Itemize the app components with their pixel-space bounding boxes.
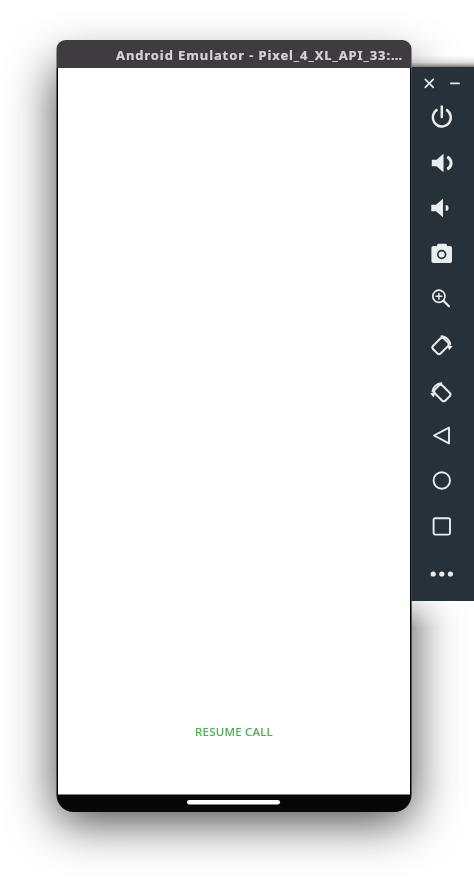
button[interactable]: RESUME CALL <box>176 718 291 745</box>
button[interactable] <box>426 510 458 542</box>
button[interactable] <box>421 75 438 92</box>
button[interactable] <box>426 330 458 362</box>
staticText: Android Emulator - Pixel_4_XL_API_33:… <box>116 46 403 62</box>
button[interactable] <box>426 377 458 409</box>
staticText: RESUME CALL <box>195 724 273 740</box>
button[interactable] <box>426 465 458 497</box>
button[interactable] <box>426 239 458 271</box>
button[interactable] <box>446 75 463 92</box>
button[interactable] <box>426 192 458 224</box>
button[interactable] <box>426 420 458 452</box>
button[interactable] <box>426 102 458 134</box>
button[interactable] <box>426 147 458 179</box>
button[interactable] <box>426 558 458 590</box>
button[interactable] <box>426 281 458 313</box>
